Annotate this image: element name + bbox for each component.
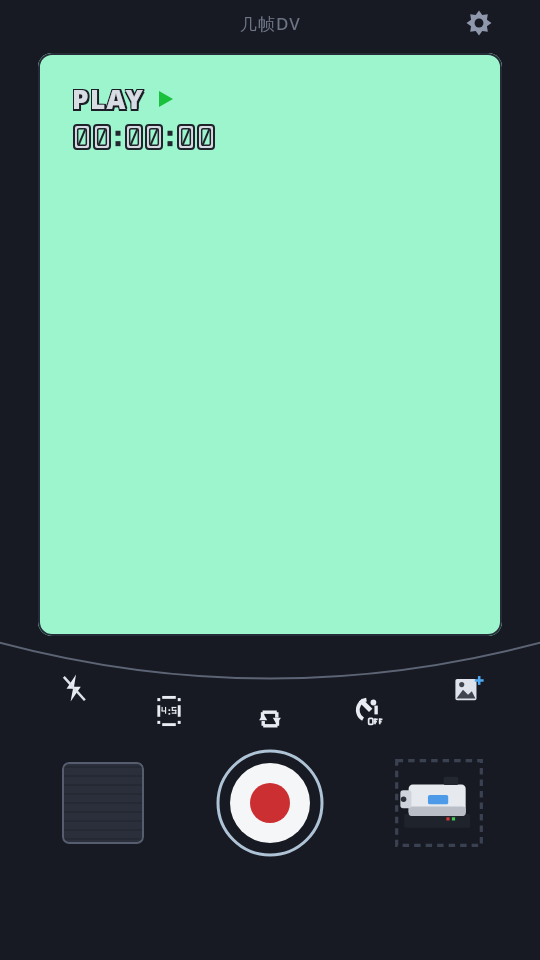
staticText: PLAY xyxy=(74,80,147,115)
staticText: PLAY xyxy=(74,83,147,118)
button[interactable]: Record xyxy=(216,749,324,857)
staticText: PLAY xyxy=(71,83,144,118)
staticText: PLAY xyxy=(72,80,145,115)
staticText: PLAY xyxy=(74,81,147,116)
staticText: PLAY xyxy=(72,81,145,116)
button[interactable]: Aspect ratio 4:5 xyxy=(145,687,193,735)
button[interactable]: Camera mode xyxy=(393,757,485,849)
staticText: PLAY xyxy=(71,80,144,115)
button[interactable]: Import media xyxy=(445,666,493,714)
staticText: PLAY xyxy=(72,83,145,118)
button[interactable]: Timer off xyxy=(346,687,394,735)
button[interactable]: Settings xyxy=(462,6,496,40)
button[interactable]: Switch camera xyxy=(246,695,294,743)
staticText: PLAY xyxy=(71,81,144,116)
button[interactable]: Last clip xyxy=(62,762,144,844)
button[interactable]: Flash off xyxy=(50,664,98,712)
staticText: 几帧DV xyxy=(240,12,301,35)
